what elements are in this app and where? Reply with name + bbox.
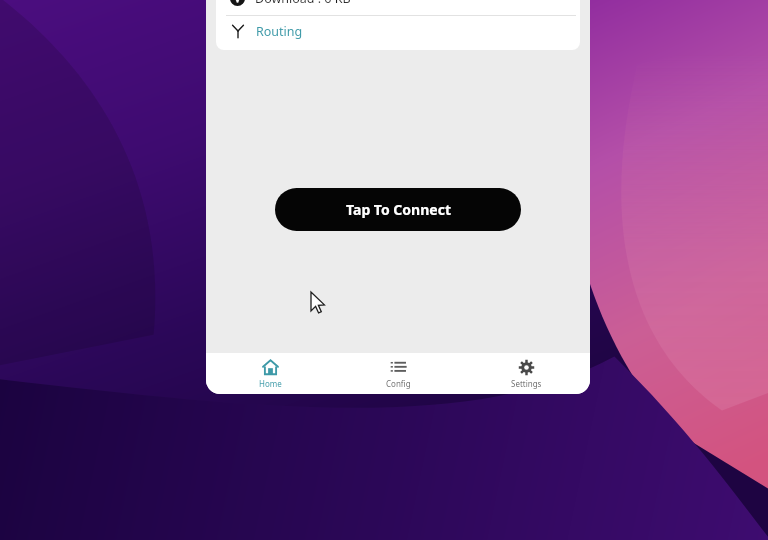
button[interactable]: Home: [206, 353, 334, 394]
button[interactable]: Download : 6 KB: [216, 0, 580, 15]
button[interactable]: Settings: [462, 353, 590, 394]
button[interactable]: Tap To Connect: [275, 188, 521, 231]
staticText: Home: [259, 378, 282, 389]
staticText: Settings: [511, 378, 542, 389]
staticText: Tap To Connect: [346, 200, 451, 219]
button[interactable]: Routing: [216, 16, 580, 46]
staticText: Download : 6 KB: [255, 0, 351, 7]
staticText: Config: [386, 378, 411, 389]
button[interactable]: Config: [334, 353, 462, 394]
staticText: Routing: [256, 23, 303, 40]
